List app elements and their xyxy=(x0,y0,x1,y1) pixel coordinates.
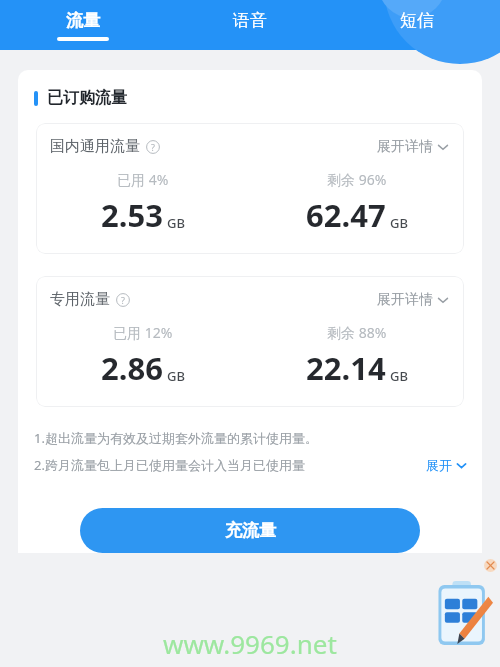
staticText: 已用 12% xyxy=(113,323,173,342)
button[interactable]: 充流量 xyxy=(80,508,420,553)
button[interactable]: 流量 xyxy=(0,0,166,50)
staticText: 1.超出流量为有效及过期套外流量的累计使用量。 xyxy=(34,429,318,447)
staticText: 展开详情 xyxy=(377,291,433,309)
staticText: 已用 4% xyxy=(117,170,169,189)
staticText: ? xyxy=(151,141,155,153)
staticText: 语音 xyxy=(233,10,267,31)
staticText: 流量 xyxy=(66,10,100,31)
staticText: 62.47 xyxy=(306,194,386,236)
button[interactable]: 国内通用流量 xyxy=(36,123,464,254)
button[interactable]: 展开 xyxy=(426,457,468,473)
staticText: 专用流量 xyxy=(50,290,110,309)
staticText: 剩余 96% xyxy=(327,170,387,189)
button[interactable]: 短信 xyxy=(333,0,500,50)
button[interactable]: 关闭 xyxy=(484,559,497,572)
staticText: GB xyxy=(390,367,408,385)
staticText: 展开 xyxy=(426,457,452,473)
button[interactable]: 意见反馈 xyxy=(435,579,493,647)
staticText: www.9969.net xyxy=(163,626,337,661)
staticText: GB xyxy=(167,367,185,385)
staticText: 展开详情 xyxy=(377,138,433,156)
staticText: 短信 xyxy=(400,10,434,31)
staticText: 2.跨月流量包上月已使用量会计入当月已使用量 xyxy=(34,456,305,474)
staticText: GB xyxy=(167,214,185,232)
staticText: 22.14 xyxy=(306,347,386,389)
staticText: 已订购流量 xyxy=(47,88,127,108)
staticText: 剩余 88% xyxy=(327,323,387,342)
staticText: 2.86 xyxy=(101,347,163,389)
button[interactable]: 语音 xyxy=(166,0,333,50)
staticText: GB xyxy=(390,214,408,232)
staticText: 充流量 xyxy=(225,520,276,541)
button[interactable]: 专用流量 xyxy=(36,276,464,407)
staticText: 国内通用流量 xyxy=(50,137,140,156)
staticText: ? xyxy=(121,294,125,306)
staticText: 2.53 xyxy=(101,194,163,236)
